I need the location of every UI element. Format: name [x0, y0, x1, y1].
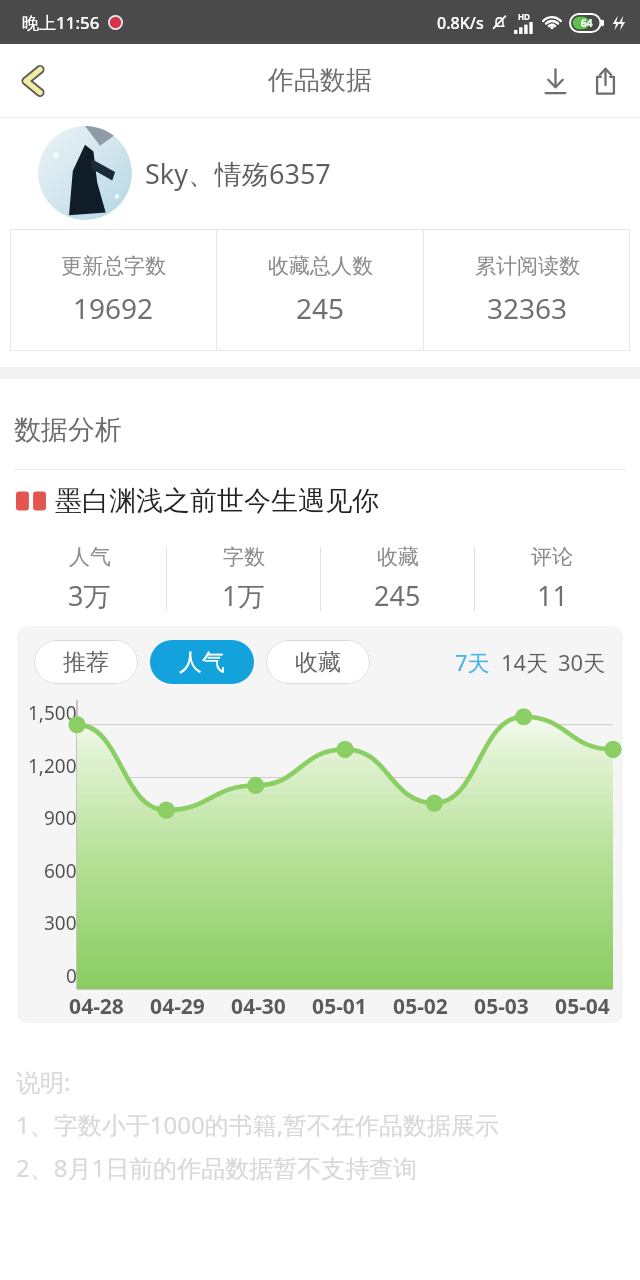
- staticText: 收藏总人数: [268, 253, 373, 279]
- button[interactable]: 人气: [150, 640, 254, 684]
- staticText: 0: [66, 963, 77, 989]
- staticText: 245: [374, 577, 421, 614]
- staticText: 04-29: [150, 992, 205, 1021]
- button[interactable]: 更新总字数: [10, 229, 216, 351]
- button[interactable]: 推荐: [34, 640, 138, 684]
- button[interactable]: 30天: [558, 647, 606, 677]
- staticText: 1、字数小于1000的书籍,暂不在作品数据展示: [16, 1108, 500, 1141]
- button[interactable]: 评论: [475, 532, 628, 626]
- staticText: 晚上11:56: [22, 11, 100, 34]
- button[interactable]: 收藏: [266, 640, 370, 684]
- staticText: 评论: [531, 544, 573, 570]
- staticText: 11: [537, 577, 568, 614]
- button[interactable]: Share: [580, 56, 630, 106]
- staticText: 05-03: [474, 992, 529, 1021]
- staticText: 1万: [222, 577, 265, 614]
- staticText: 0.8K/s: [437, 12, 484, 34]
- button[interactable]: Download: [530, 56, 580, 106]
- staticText: 人气: [69, 544, 111, 570]
- staticText: Sky、情殇6357: [145, 155, 331, 192]
- staticText: 3万: [68, 577, 111, 614]
- button[interactable]: 字数: [167, 532, 320, 626]
- staticText: HD: [518, 11, 530, 22]
- staticText: 04-30: [231, 992, 286, 1021]
- staticText: 300: [44, 910, 77, 936]
- staticText: 1,500: [28, 700, 77, 726]
- staticText: 推荐: [63, 648, 109, 677]
- staticText: 收藏: [377, 544, 419, 570]
- button[interactable]: 累计阅读数: [424, 229, 630, 351]
- staticText: 累计阅读数: [475, 253, 580, 279]
- staticText: 245: [296, 289, 345, 327]
- staticText: 收藏: [295, 648, 341, 677]
- staticText: 1,200: [28, 753, 77, 779]
- staticText: 05-04: [555, 992, 610, 1021]
- staticText: 2、8月1日前的作品数据暂不支持查询: [16, 1151, 418, 1184]
- staticText: 04-28: [69, 992, 124, 1021]
- button[interactable]: 墨白渊浅之前世今生遇见你: [16, 470, 640, 532]
- staticText: 数据分析: [14, 413, 122, 447]
- staticText: 作品数据: [268, 64, 372, 97]
- button[interactable]: 7天: [455, 647, 490, 677]
- staticText: 人气: [179, 648, 225, 677]
- staticText: 05-01: [312, 992, 367, 1021]
- staticText: 64: [581, 16, 593, 30]
- button[interactable]: 人气: [12, 532, 166, 626]
- button[interactable]: Back: [4, 52, 62, 110]
- staticText: 900: [44, 805, 77, 831]
- staticText: 更新总字数: [61, 253, 166, 279]
- staticText: 32363: [487, 289, 568, 327]
- button[interactable]: 收藏: [321, 532, 474, 626]
- staticText: 600: [44, 858, 77, 884]
- staticText: 05-02: [393, 992, 448, 1021]
- staticText: 19692: [73, 289, 154, 327]
- button[interactable]: 收藏总人数: [217, 229, 423, 351]
- staticText: 说明:: [16, 1065, 71, 1098]
- staticText: 字数: [223, 544, 265, 570]
- staticText: 墨白渊浅之前世今生遇见你: [55, 484, 379, 518]
- button[interactable]: 14天: [501, 647, 549, 677]
